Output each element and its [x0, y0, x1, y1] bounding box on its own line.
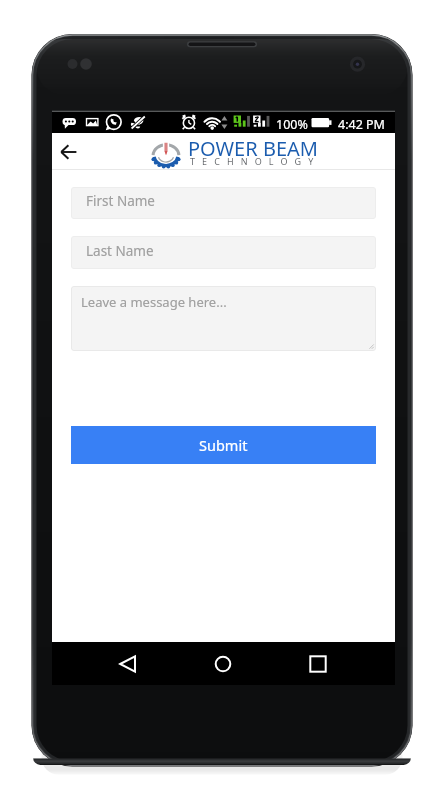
- button[interactable]: First Name: [71, 187, 376, 219]
- staticText: Leave a message here...: [81, 293, 227, 311]
- button[interactable]: Home: [199, 642, 247, 685]
- staticText: Submit: [199, 435, 248, 455]
- button[interactable]: Submit: [71, 426, 376, 464]
- button[interactable]: Recent apps: [294, 642, 342, 685]
- button[interactable]: Leave a message here...: [71, 286, 376, 351]
- button[interactable]: Last Name: [71, 236, 376, 269]
- staticText: 100%: [276, 116, 308, 133]
- button[interactable]: Back: [53, 136, 85, 168]
- button[interactable]: Back: [104, 642, 152, 685]
- staticText: 4:42 PM: [338, 116, 385, 133]
- staticText: TECHNOLOGY: [190, 155, 321, 167]
- staticText: POWER BEAM: [188, 135, 318, 162]
- staticText: Last Name: [86, 242, 154, 260]
- staticText: First Name: [86, 192, 155, 210]
